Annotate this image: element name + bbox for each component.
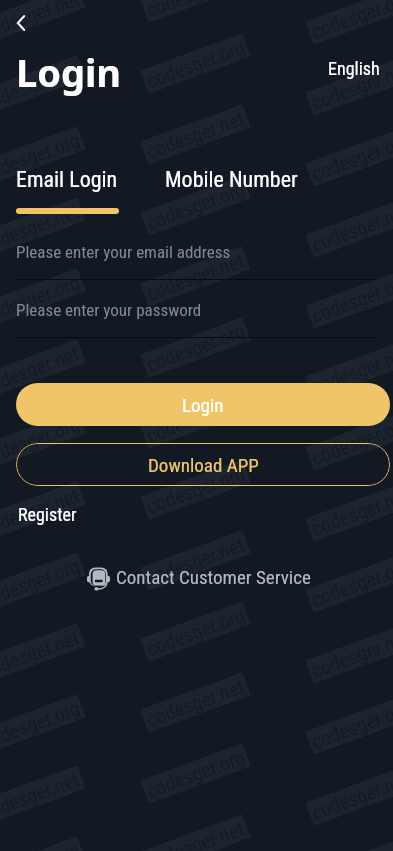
staticText: codesger.net: [0, 341, 83, 398]
staticText: codesger.org: [308, 412, 393, 469]
staticText: codesger.org: [308, 838, 393, 851]
staticText: Email Login: [16, 167, 118, 193]
staticText: Mobile Number: [165, 167, 298, 193]
button[interactable]: Login: [16, 383, 390, 426]
staticText: codesger.org: [0, 696, 83, 753]
staticText: codesger.org: [308, 270, 393, 327]
staticText: codesger.net: [0, 57, 83, 114]
staticText: codesger.org: [0, 270, 83, 327]
button[interactable]: English: [328, 58, 380, 79]
staticText: codesger.net: [143, 674, 248, 731]
staticText: codesger.org: [0, 128, 83, 185]
staticText: codesger.org: [308, 0, 393, 43]
staticText: codesger.net: [0, 483, 83, 540]
staticText: codesger.net: [308, 57, 393, 114]
staticText: codesger.net: [143, 106, 248, 163]
staticText: codesger.net: [308, 625, 393, 682]
staticText: codesger.org: [308, 696, 393, 753]
staticText: English: [328, 58, 380, 79]
button[interactable]: Back: [7, 9, 35, 37]
staticText: codesger.net: [0, 199, 83, 256]
staticText: codesger.net: [143, 532, 248, 589]
staticText: codesger.org: [308, 554, 393, 611]
staticText: codesger.net: [0, 0, 83, 43]
staticText: Contact Customer Service: [116, 566, 311, 588]
staticText: codesger.net: [308, 199, 393, 256]
staticText: codesger.org: [143, 745, 248, 802]
staticText: codesger.org: [143, 461, 248, 518]
staticText: codesger.org: [143, 35, 248, 92]
staticText: codesger.org: [308, 128, 393, 185]
staticText: codesger.net: [308, 767, 393, 824]
staticText: codesger.org: [0, 412, 83, 469]
button[interactable]: Download APP: [16, 443, 390, 486]
button[interactable]: Mobile Number: [165, 167, 298, 193]
staticText: codesger.net: [143, 248, 248, 305]
staticText: codesger.org: [143, 319, 248, 376]
staticText: codesger.org: [0, 838, 83, 851]
button[interactable]: Register: [18, 504, 77, 525]
staticText: codesger.net: [0, 625, 83, 682]
staticText: codesger.net: [143, 390, 248, 447]
staticText: Please enter your password: [16, 300, 202, 320]
staticText: codesger.org: [143, 603, 248, 660]
staticText: Login: [182, 394, 224, 416]
staticText: Please enter your email address: [16, 242, 231, 262]
staticText: codesger.org: [0, 554, 83, 611]
staticText: codesger.net: [308, 341, 393, 398]
staticText: codesger.net: [0, 767, 83, 824]
button[interactable]: Contact Customer Service: [87, 566, 311, 590]
button[interactable]: Email Login: [16, 167, 118, 193]
staticText: codesger.org: [143, 177, 248, 234]
staticText: codesger.net: [143, 816, 248, 851]
staticText: Register: [18, 504, 77, 525]
staticText: Download APP: [148, 454, 259, 476]
staticText: Login: [16, 46, 122, 98]
staticText: codesger.net: [308, 483, 393, 540]
staticText: codesger.net: [143, 0, 248, 21]
